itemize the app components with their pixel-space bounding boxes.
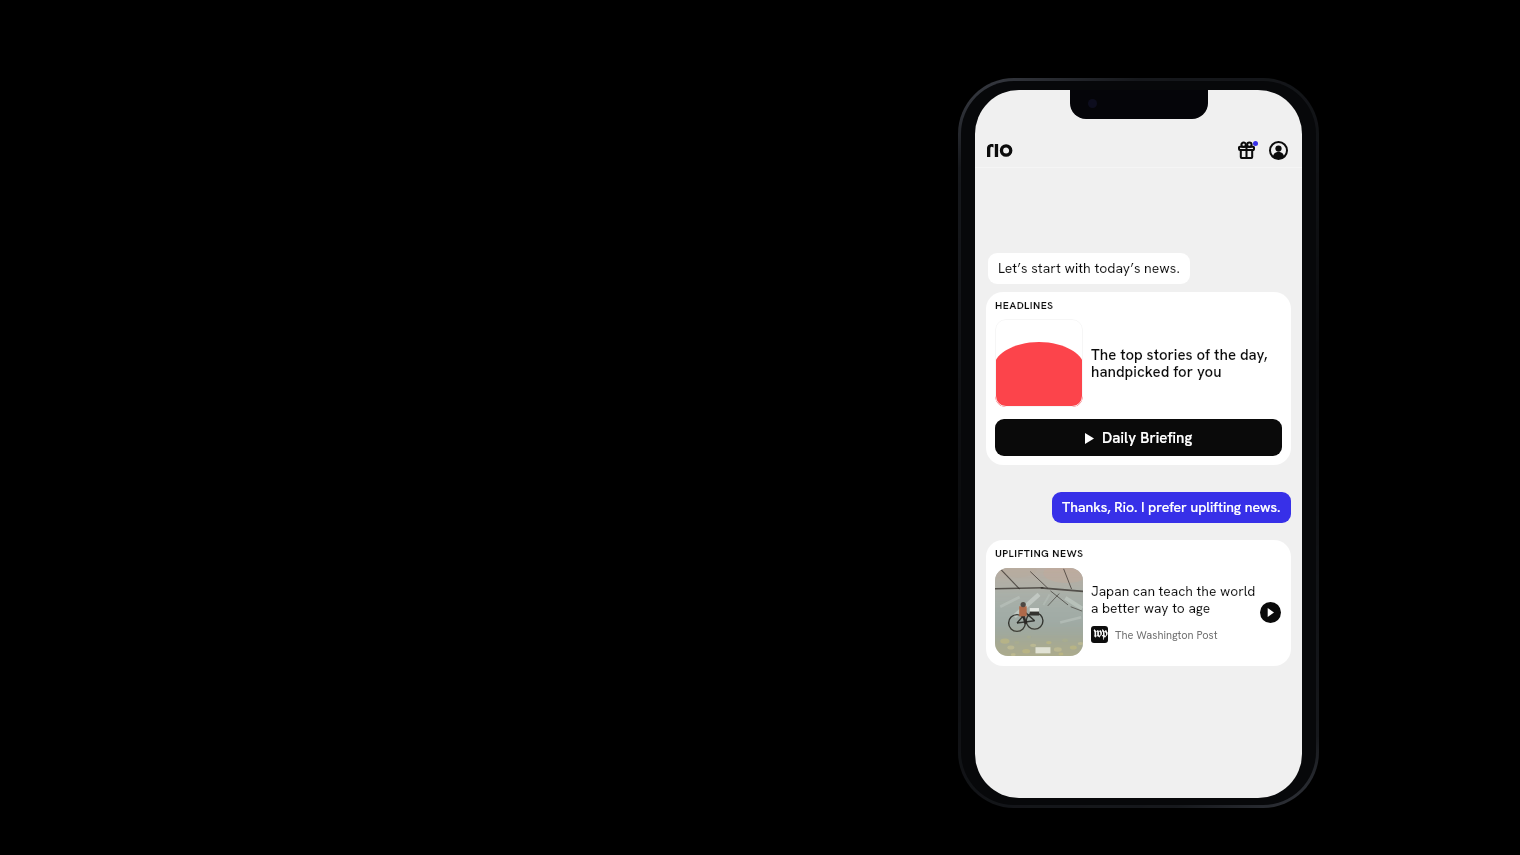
staticText: wp: [1093, 627, 1108, 640]
staticText: Japan can teach the world a better way t…: [1091, 582, 1259, 618]
staticText: Let’s start with today’s news.: [998, 259, 1180, 277]
button[interactable]: Rewards: [1233, 137, 1259, 163]
button[interactable]: Account: [1265, 137, 1291, 163]
button[interactable]: Play article: [1260, 602, 1281, 623]
button[interactable]: Thanks, Rio. I prefer uplifting news.: [1052, 492, 1291, 523]
staticText: The top stories of the day, handpicked f…: [1091, 345, 1282, 382]
staticText: Daily Briefing: [1102, 428, 1193, 448]
button[interactable]: Let’s start with today’s news.: [988, 253, 1190, 284]
staticText: The Washington Post: [1115, 628, 1218, 642]
button[interactable]: UPLIFTING NEWS: [986, 540, 1291, 666]
staticText: HEADLINES: [995, 298, 1054, 309]
button[interactable]: Daily Briefing: [995, 419, 1282, 456]
staticText: Thanks, Rio. I prefer uplifting news.: [1062, 498, 1281, 516]
button[interactable]: HEADLINES: [986, 292, 1291, 465]
button[interactable]: Rio home: [987, 144, 1011, 157]
staticText: UPLIFTING NEWS: [995, 546, 1084, 557]
